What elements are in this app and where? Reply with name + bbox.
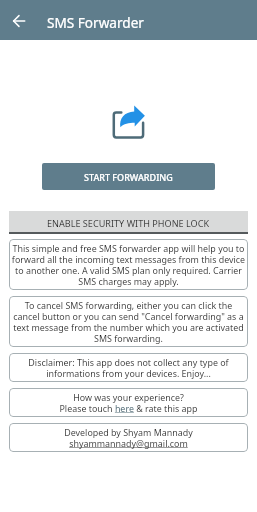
button[interactable]: Disclaimer: This app does not collect an… — [9, 353, 248, 382]
staticText: ENABLE SECURITY WITH PHONE LOCK — [47, 217, 210, 229]
button[interactable]: To cancel SMS forwarding, either you can… — [9, 296, 248, 347]
staticText: Disclaimer: This app does not collect an… — [11, 356, 246, 379]
staticText: START FORWARDING — [84, 171, 173, 183]
staticText: To cancel SMS forwarding, either you can… — [11, 299, 246, 344]
button[interactable]: Navigate up — [1, 3, 37, 39]
staticText: Developed by Shyam Mannady shyammannady@… — [64, 426, 193, 449]
button[interactable]: ENABLE SECURITY WITH PHONE LOCK — [9, 211, 248, 234]
button[interactable]: Developed by Shyam Mannady shyammannady@… — [9, 423, 248, 452]
button[interactable]: How was your experience? Please touch he… — [9, 388, 248, 417]
button[interactable]: START FORWARDING — [42, 163, 215, 190]
staticText: How was your experience? Please touch he… — [59, 391, 198, 414]
button[interactable]: This simple and free SMS forwarder app w… — [9, 239, 248, 290]
staticText: This simple and free SMS forwarder app w… — [11, 242, 246, 287]
staticText: SMS Forwarder — [47, 13, 144, 32]
